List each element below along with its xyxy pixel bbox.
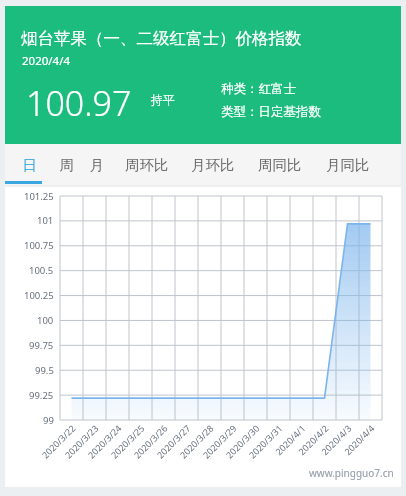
button[interactable]: 周环比 [118,146,176,184]
button[interactable]: 月 [81,146,113,184]
button[interactable]: 价格指数走势图 [5,190,401,480]
button[interactable]: 月环比 [184,146,242,184]
button[interactable]: 月同比 [319,146,377,184]
button[interactable]: 日 [13,146,47,184]
button[interactable]: 周同比 [251,146,309,184]
button[interactable]: 周 [51,146,83,184]
